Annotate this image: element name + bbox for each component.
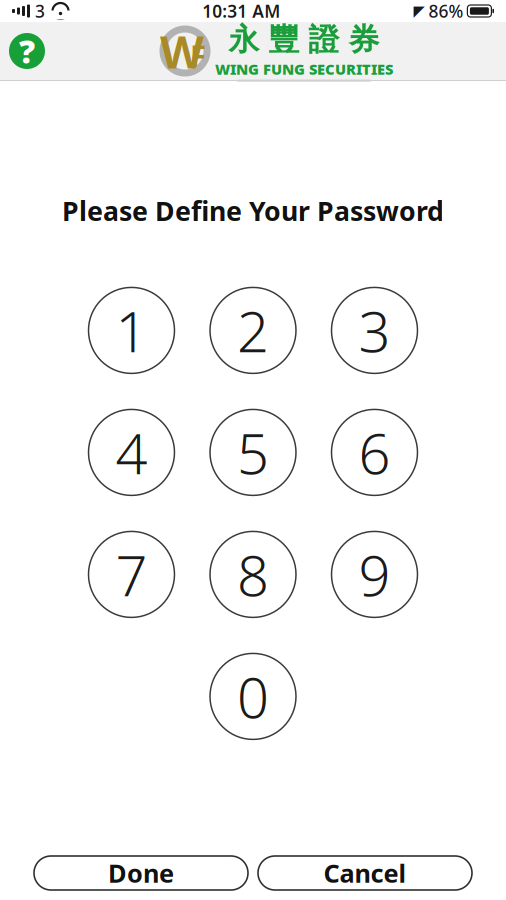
staticText: 5 [237,415,269,490]
staticText: 0 [237,659,269,734]
button[interactable]: 8 [210,531,296,617]
button[interactable]: Cancel [258,856,472,890]
button[interactable]: Help [0,22,54,80]
button[interactable]: 7 [88,531,174,617]
button[interactable]: 3 [331,287,417,373]
button[interactable]: 5 [210,409,296,495]
button[interactable]: 6 [331,409,417,495]
staticText: 3 [35,0,45,22]
staticText: 永 豐 證 券 [228,21,379,58]
staticText: Cancel [323,856,406,890]
staticText: WING FUNG SECURITIES [215,59,393,79]
button[interactable]: 1 [88,287,174,373]
staticText: 86% [428,0,463,22]
staticText: 10:31 AM [202,0,280,22]
staticText: ◤ [413,3,424,19]
staticText: Done [108,856,174,890]
button[interactable]: 2 [210,287,296,373]
staticText: 9 [358,537,390,612]
staticText: 6 [358,415,390,490]
staticText: Please Define Your Password [62,193,444,228]
staticText: 1 [115,293,147,368]
staticText: 8 [237,537,269,612]
button[interactable]: Done [34,856,248,890]
staticText: 3 [358,293,390,368]
staticText: 4 [115,415,147,490]
button[interactable]: 9 [331,531,417,617]
button[interactable]: 0 [210,653,296,739]
staticText: W [160,21,204,81]
button[interactable]: 4 [88,409,174,495]
staticText: 7 [115,537,147,612]
staticText: F [190,35,206,74]
staticText: ? [19,30,35,72]
staticText: 2 [237,293,269,368]
